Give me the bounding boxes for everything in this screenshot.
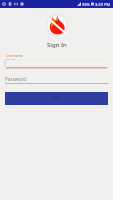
staticText: 3:39 PM (95, 2, 111, 7)
button[interactable]: Password (5, 76, 108, 84)
staticText: Sign In (47, 41, 67, 49)
button[interactable]: Username (0, 52, 113, 69)
staticText: SIGN (52, 95, 61, 100)
staticText: Password (5, 76, 26, 82)
staticText: Username (6, 53, 23, 58)
staticText: 93% (82, 2, 90, 7)
